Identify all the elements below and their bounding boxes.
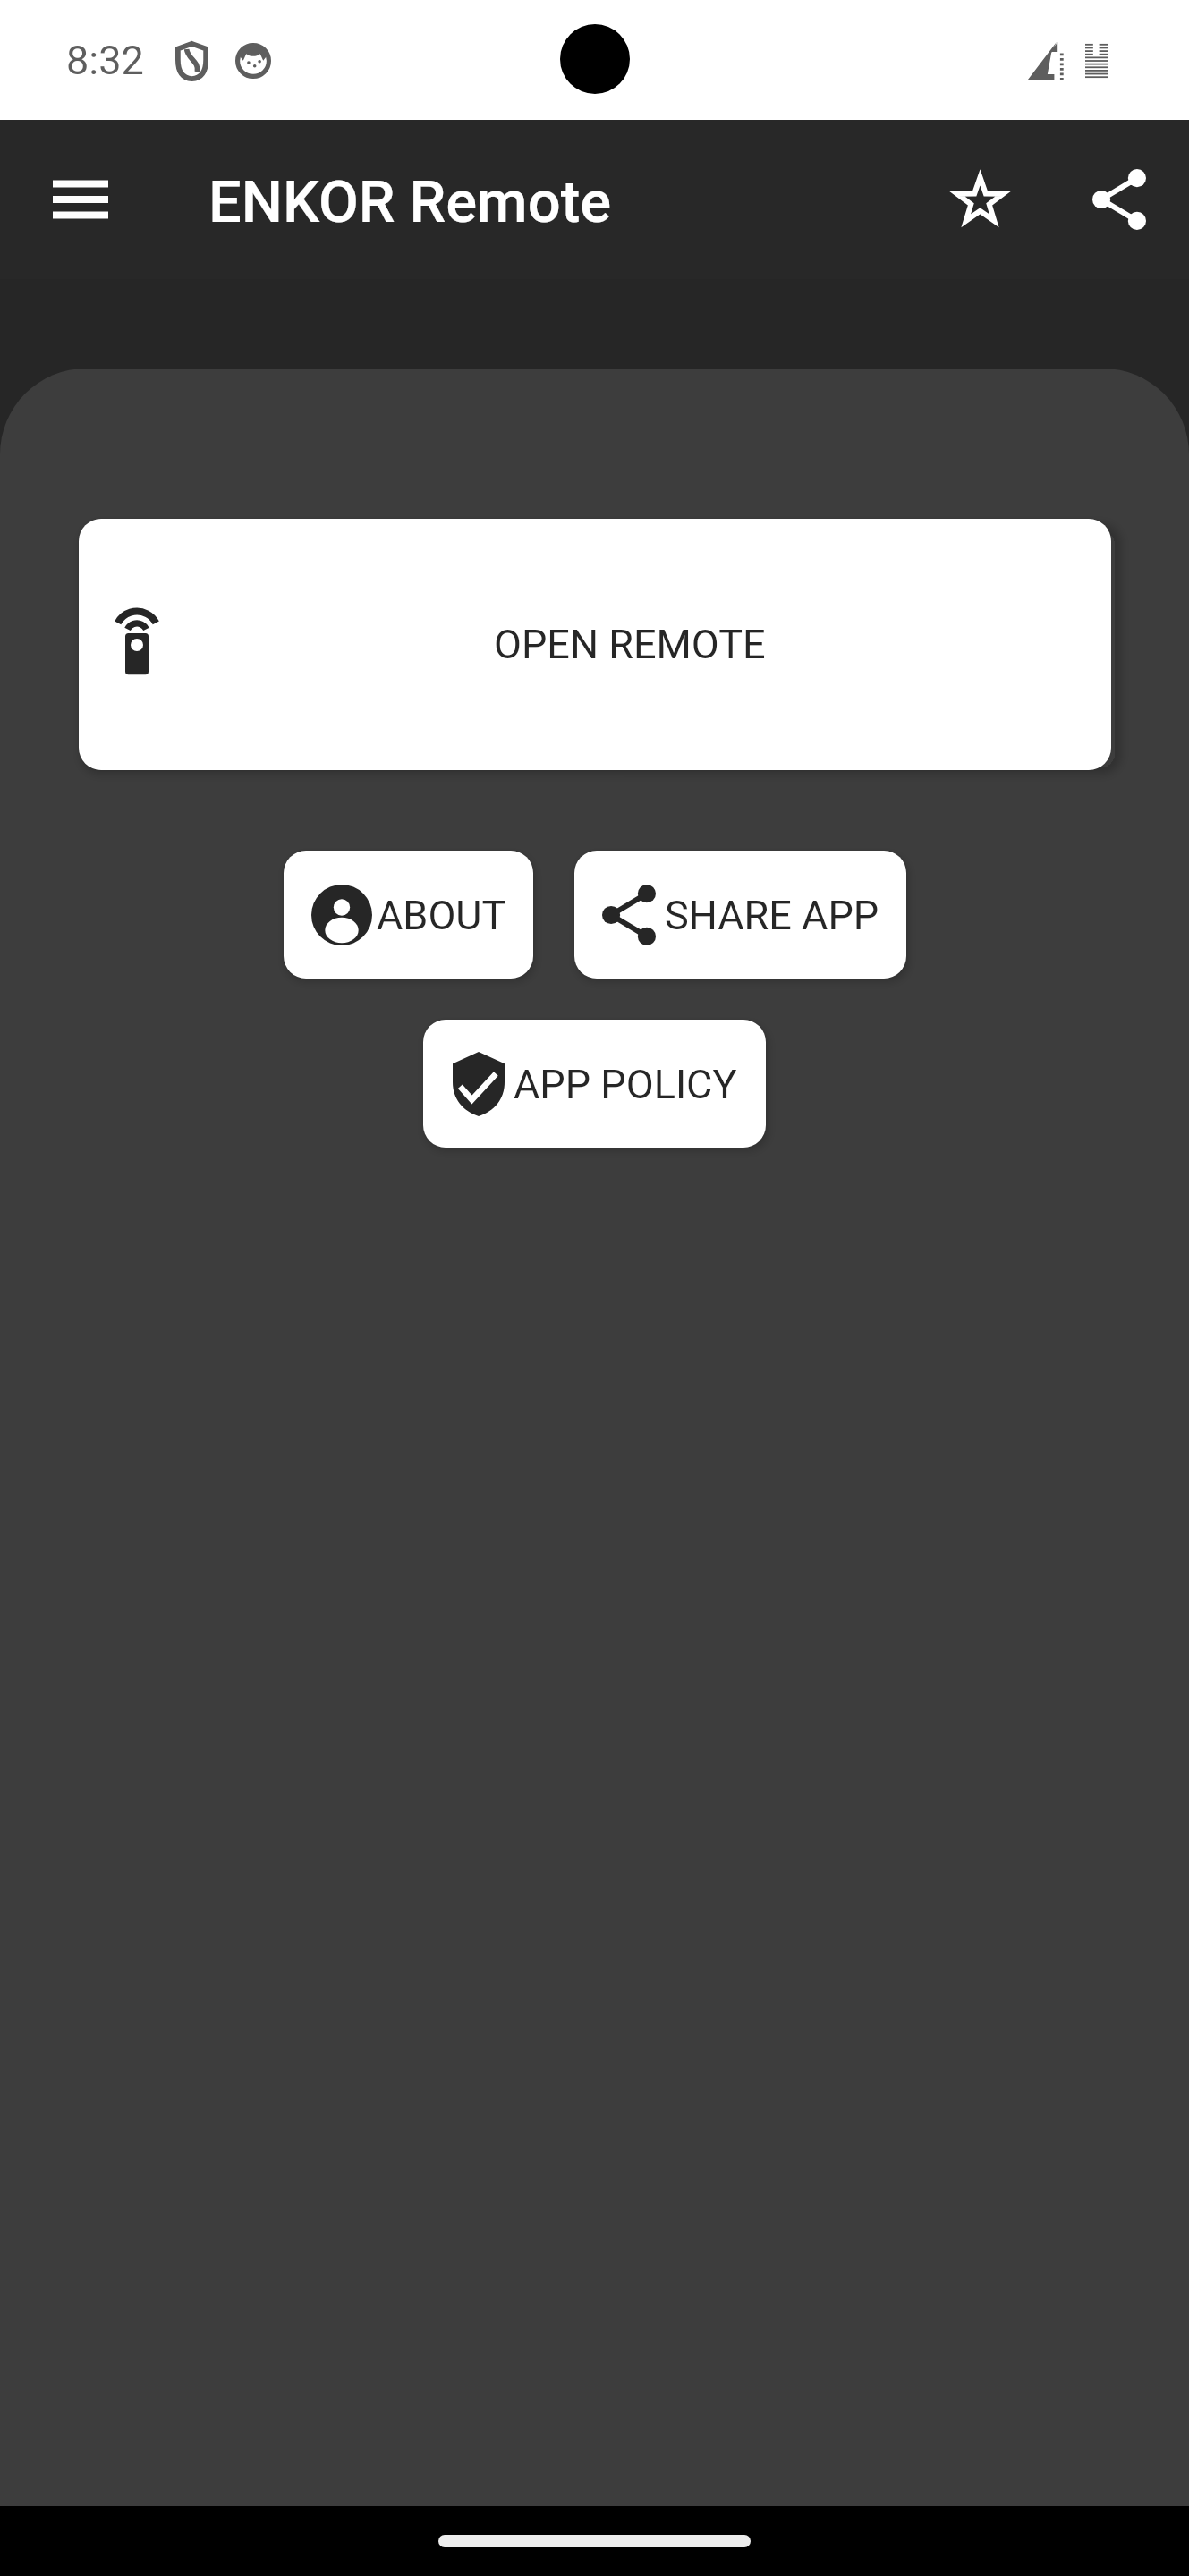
button[interactable]: Share: [1092, 169, 1146, 230]
button[interactable]: Navigation menu: [53, 172, 108, 227]
staticText: APP POLICY: [514, 1061, 737, 1108]
staticText: SHARE APP: [665, 892, 879, 939]
staticText: 8:32: [66, 37, 144, 84]
staticText: ABOUT: [377, 892, 506, 939]
staticText: ENKOR Remote: [208, 168, 612, 236]
button[interactable]: ABOUT: [284, 851, 533, 979]
button[interactable]: SHARE APP: [574, 851, 906, 979]
button[interactable]: OPEN REMOTE: [79, 519, 1111, 770]
button[interactable]: APP POLICY: [423, 1020, 766, 1148]
staticText: OPEN REMOTE: [494, 621, 766, 668]
button[interactable]: Rate app: [955, 174, 1006, 225]
